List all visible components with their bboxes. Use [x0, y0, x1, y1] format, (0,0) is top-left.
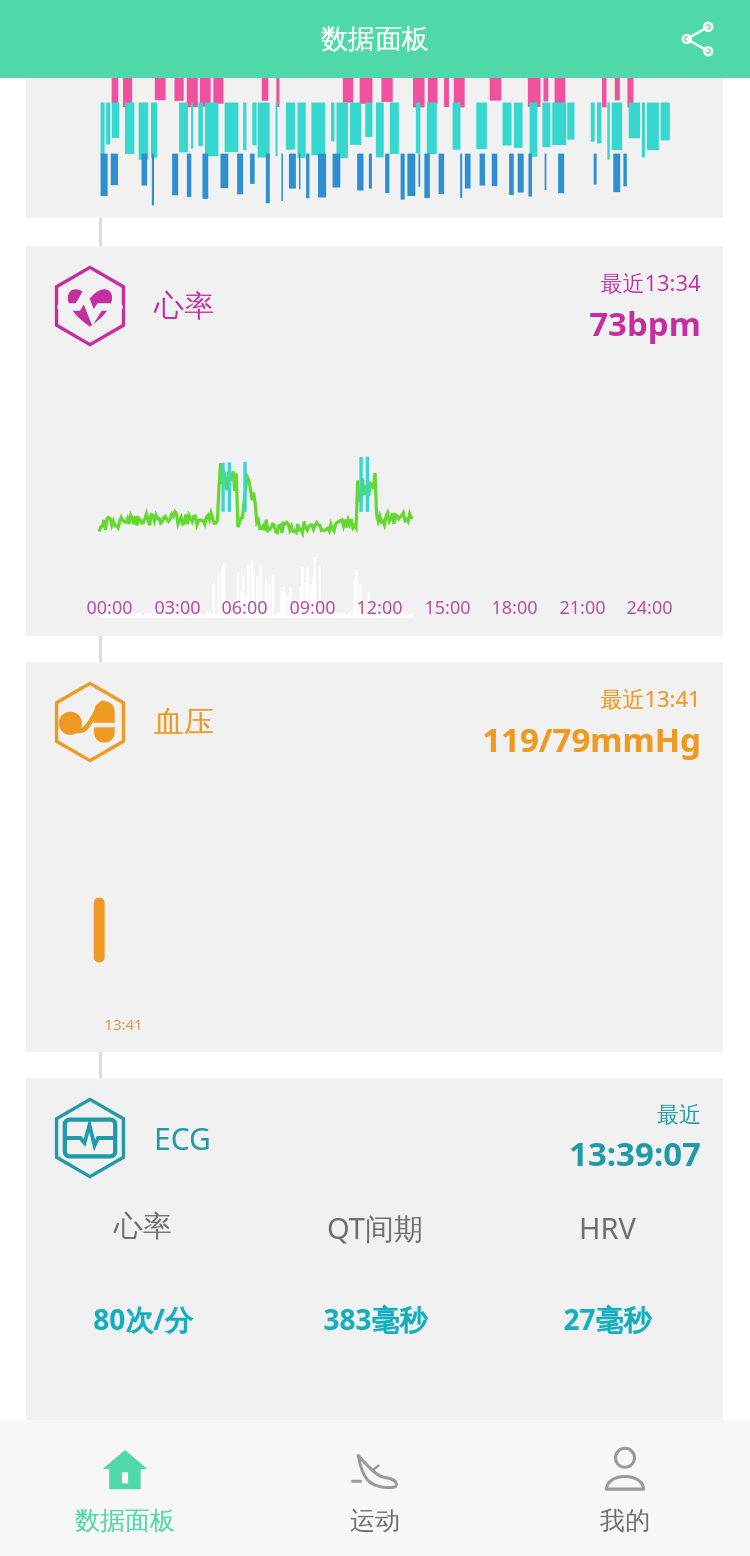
button[interactable]: 我的: [500, 1420, 750, 1556]
staticText: 数据面板: [75, 1505, 175, 1536]
staticText: 383毫秒: [323, 1300, 428, 1338]
staticText: 24:00: [626, 595, 673, 620]
staticText: 13:39:07: [569, 1131, 701, 1176]
staticText: 我的: [600, 1505, 650, 1536]
staticText: 21:00: [559, 595, 606, 620]
staticText: 心率: [114, 1208, 172, 1245]
staticText: 最近13:41: [600, 683, 701, 713]
staticText: 80次/分: [93, 1300, 193, 1338]
staticText: 03:00: [154, 595, 201, 620]
staticText: 18:00: [491, 595, 538, 620]
staticText: 09:00: [289, 595, 336, 620]
staticText: 27毫秒: [563, 1300, 652, 1338]
staticText: 73bpm: [589, 301, 701, 346]
button[interactable]: Share: [672, 13, 724, 65]
staticText: 12:00: [356, 595, 403, 620]
staticText: 数据面板: [321, 22, 429, 56]
staticText: 00:00: [86, 595, 133, 620]
staticText: QT间期: [327, 1208, 423, 1248]
button[interactable]: [26, 78, 723, 218]
button[interactable]: ECG: [26, 1078, 723, 1420]
staticText: 15:00: [424, 595, 471, 620]
staticText: 血压: [154, 703, 214, 741]
button[interactable]: 数据面板: [0, 1420, 250, 1556]
staticText: 13:41: [104, 1014, 143, 1034]
button[interactable]: 血压: [26, 662, 723, 1052]
button[interactable]: 心率: [26, 246, 723, 636]
staticText: 最近: [657, 1101, 701, 1129]
staticText: 运动: [350, 1505, 400, 1536]
staticText: 119/79mmHg: [482, 717, 701, 762]
staticText: 06:00: [221, 595, 268, 620]
staticText: ECG: [154, 1118, 211, 1159]
staticText: HRV: [579, 1208, 636, 1247]
button[interactable]: 运动: [250, 1420, 500, 1556]
staticText: 最近13:34: [600, 267, 701, 297]
staticText: 心率: [154, 287, 214, 325]
